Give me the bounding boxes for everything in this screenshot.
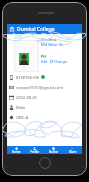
button[interactable]: OBC-A <box>7 112 82 122</box>
button[interactable]: College <box>7 24 82 34</box>
button[interactable]: 8768766108 <box>7 72 82 82</box>
button[interactable]: 2002-08-25 <box>7 92 82 102</box>
staticText: Home <box>12 150 21 154</box>
staticText: Student <box>41 37 57 42</box>
staticText: Md Nasir Sk <box>41 42 64 47</box>
button[interactable]: Edit <box>41 59 48 64</box>
staticText: nasusnl9103@gmail.com <box>16 85 63 90</box>
staticText: 8768766108 <box>16 75 39 80</box>
button[interactable]: Home <box>7 146 25 154</box>
staticText: 2002-08-25 <box>16 95 37 100</box>
staticText: PH <box>41 54 46 59</box>
staticText: Profile <box>30 150 40 154</box>
staticText: Change <box>54 59 67 64</box>
staticText: Dumkal College <box>17 26 55 33</box>
button[interactable]: Profile <box>25 146 44 154</box>
other: College <box>9 26 15 32</box>
staticText: Male <box>16 105 26 110</box>
button[interactable]: Notice <box>44 146 63 154</box>
button[interactable]: More <box>63 146 82 154</box>
button[interactable]: Change <box>50 59 67 64</box>
staticText: OBC-A <box>16 115 29 120</box>
button[interactable]: nasusnl9103@gmail.com <box>7 82 82 92</box>
staticText: Notice <box>49 150 59 154</box>
staticText: Edit <box>41 59 48 64</box>
button[interactable]: Male <box>7 102 82 112</box>
staticText: More <box>69 150 77 154</box>
